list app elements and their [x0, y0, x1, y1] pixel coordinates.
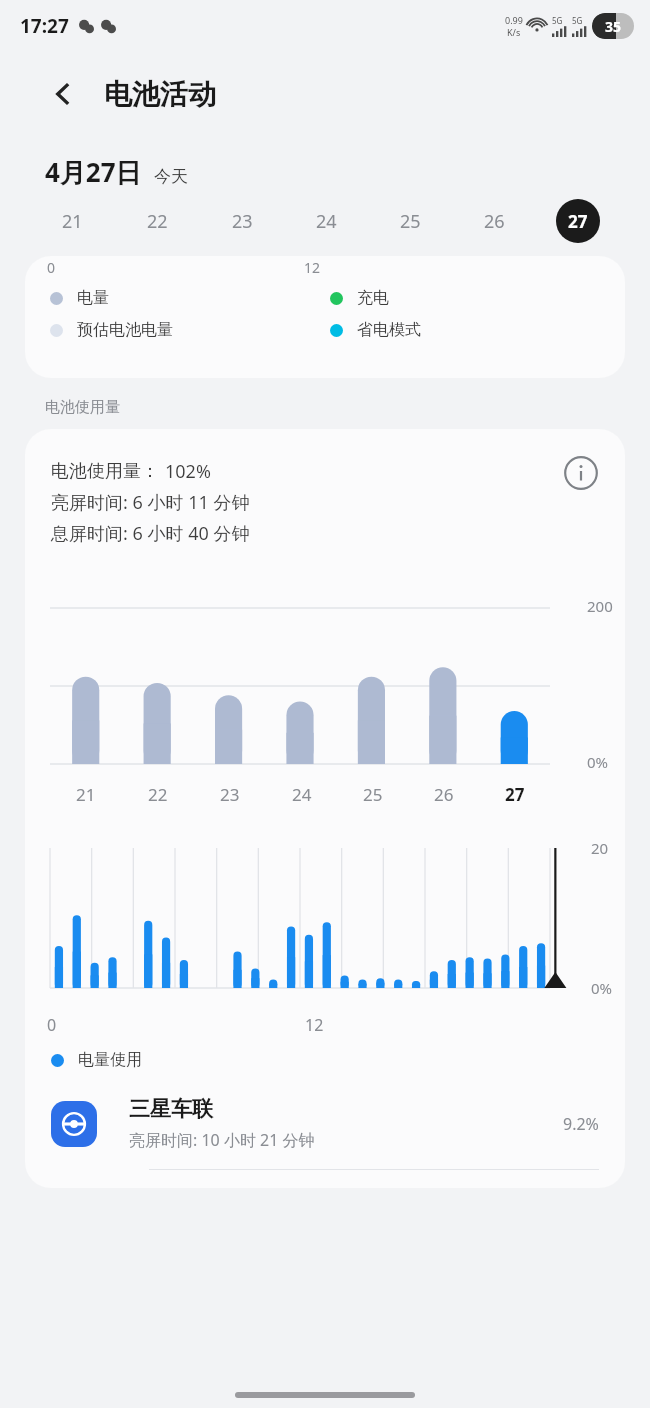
staticText: 电池使用量 — [45, 398, 120, 417]
staticText: 12 — [304, 258, 321, 277]
staticText: 充电 — [357, 288, 389, 308]
staticText: 预估电池电量 — [77, 320, 173, 340]
staticText: 23 — [220, 783, 240, 806]
staticText: 27 — [568, 210, 588, 233]
staticText: 电量使用 — [78, 1050, 142, 1070]
staticText: K/s — [507, 26, 521, 38]
staticText: 0 — [47, 1014, 57, 1036]
button[interactable]: 三星车联 — [25, 1096, 625, 1188]
staticText: 23 — [232, 209, 253, 234]
staticText: 0.99 — [505, 14, 523, 26]
staticText: 22 — [148, 783, 168, 806]
staticText: 5G — [552, 15, 563, 26]
staticText: 0% — [591, 978, 613, 998]
button[interactable]: 24 — [284, 190, 368, 252]
button[interactable]: 27 — [536, 190, 620, 252]
button[interactable]: 26 — [452, 190, 536, 252]
staticText: 26 — [484, 209, 505, 234]
staticText: 5G — [572, 15, 583, 26]
staticText: 26 — [434, 783, 454, 806]
button[interactable]: 25 — [368, 190, 452, 252]
staticText: 息屏时间: 6 小时 40 分钟 — [51, 521, 250, 546]
staticText: 27 — [505, 783, 525, 806]
staticText: 22 — [147, 209, 168, 234]
staticText: 今天 — [154, 166, 188, 187]
button[interactable]: 信息 — [559, 451, 603, 495]
staticText: 电量 — [77, 288, 109, 308]
staticText: 三星车联 — [129, 1096, 213, 1122]
staticText: 亮屏时间: 6 小时 11 分钟 — [51, 490, 250, 515]
staticText: 0% — [587, 752, 609, 772]
staticText: 21 — [62, 209, 83, 234]
staticText: 24 — [316, 209, 337, 234]
staticText: 4月27日 — [45, 154, 142, 190]
button[interactable]: 23 — [200, 190, 284, 252]
staticText: 25 — [400, 209, 421, 234]
staticText: 17:27 — [20, 13, 69, 39]
staticText: 35 — [605, 17, 622, 36]
staticText: 0 — [47, 258, 56, 277]
staticText: 21 — [76, 783, 96, 806]
button[interactable]: 返回 — [42, 72, 86, 116]
button[interactable]: 22 — [115, 190, 200, 252]
staticText: 25 — [363, 783, 383, 806]
button[interactable]: 21 — [30, 190, 115, 252]
staticText: 电池使用量： — [51, 460, 159, 483]
staticText: 20 — [591, 838, 609, 858]
staticText: 9.2% — [563, 1113, 599, 1135]
staticText: 102% — [165, 459, 211, 484]
staticText: 亮屏时间: 10 小时 21 分钟 — [129, 1129, 315, 1151]
staticText: 200 — [587, 596, 613, 616]
staticText: 24 — [292, 783, 312, 806]
staticText: 12 — [305, 1014, 324, 1036]
staticText: 电池活动 — [104, 77, 216, 112]
staticText: 省电模式 — [357, 320, 421, 340]
